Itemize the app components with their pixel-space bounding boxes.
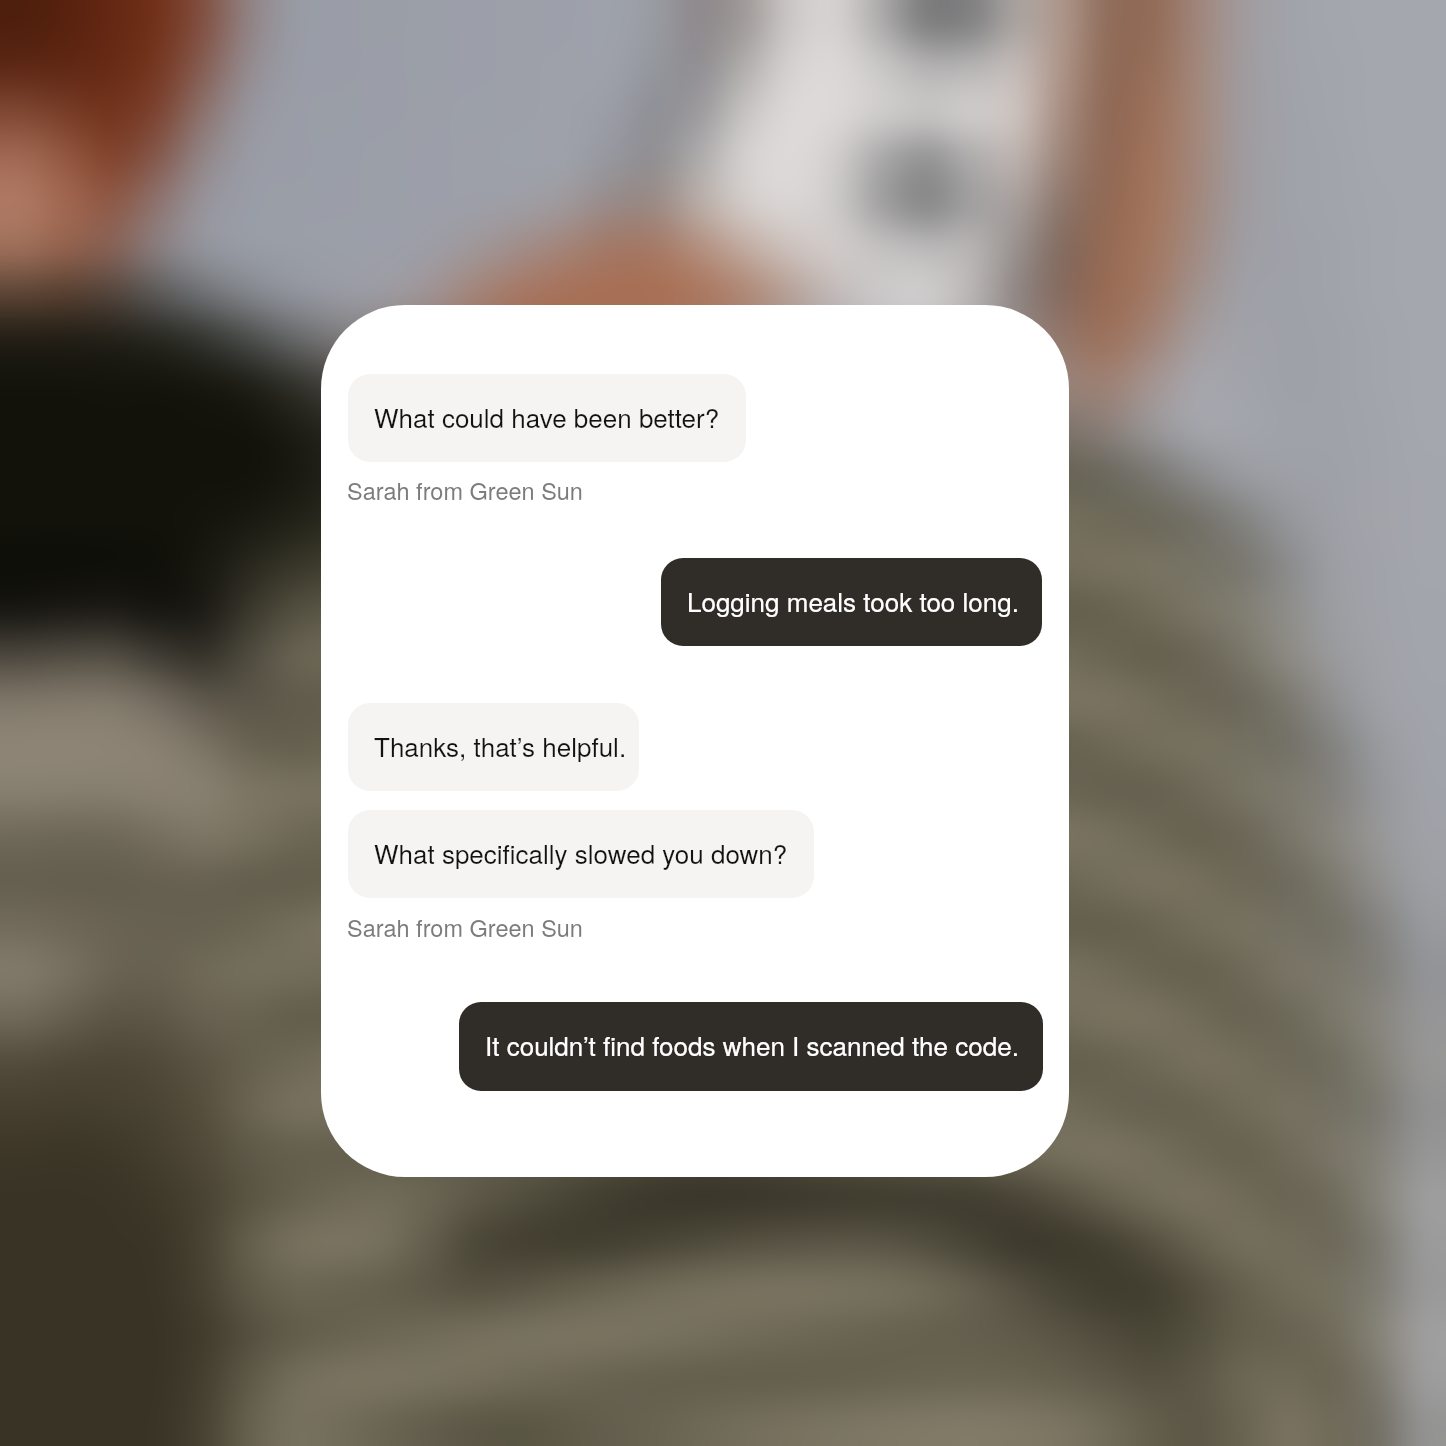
staticText: Sarah from Green Sun — [347, 473, 583, 507]
button[interactable]: It couldn’t find foods when I scanned th… — [459, 1002, 1043, 1091]
button[interactable]: Logging meals took too long. — [661, 558, 1042, 646]
staticText: Thanks, that’s helpful. — [374, 727, 627, 764]
button[interactable]: Thanks, that’s helpful. — [348, 703, 639, 791]
staticText: Sarah from Green Sun — [347, 910, 583, 944]
other: Conversation — [321, 305, 1069, 1177]
staticText: Logging meals took too long. — [687, 582, 1019, 619]
staticText: What could have been better? — [374, 398, 720, 435]
button[interactable]: What specifically slowed you down? — [348, 810, 814, 898]
staticText: What specifically slowed you down? — [374, 834, 788, 871]
staticText: It couldn’t find foods when I scanned th… — [485, 1026, 1019, 1063]
button[interactable]: What could have been better? — [348, 374, 746, 462]
